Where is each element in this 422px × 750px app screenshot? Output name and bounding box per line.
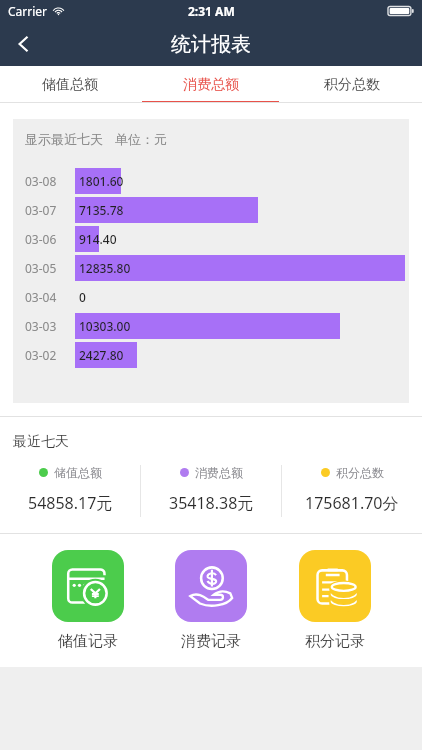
staticText: Carrier xyxy=(8,3,48,19)
staticText: 积分总数 xyxy=(336,465,384,480)
staticText: 914.40 xyxy=(79,231,117,247)
staticText: 储值记录 xyxy=(58,632,118,651)
staticText: 2427.80 xyxy=(79,347,124,363)
staticText: 积分总数 xyxy=(324,76,380,94)
staticText: 消费记录 xyxy=(181,632,241,651)
staticText: 0 xyxy=(79,289,86,305)
staticText: 7135.78 xyxy=(79,202,124,218)
staticText: 统计报表 xyxy=(171,32,251,57)
staticText: 03-05 xyxy=(25,260,57,276)
button[interactable]: 积分记录 xyxy=(299,550,371,651)
staticText: 03-07 xyxy=(25,202,57,218)
staticText: 03-03 xyxy=(25,318,57,334)
button[interactable]: 消费总额 xyxy=(141,465,281,514)
staticText: 10303.00 xyxy=(79,318,131,334)
staticText: 2:31 AM xyxy=(188,3,235,19)
staticText: 12835.80 xyxy=(79,260,131,276)
button[interactable]: 积分总数 xyxy=(282,465,422,514)
staticText: 显示最近七天 xyxy=(25,131,103,147)
staticText: 积分记录 xyxy=(305,632,365,651)
staticText: 消费总额 xyxy=(195,465,243,480)
button[interactable]: 消费记录 xyxy=(175,550,247,651)
staticText: 175681.70分 xyxy=(305,492,399,514)
button[interactable]: 储值总额 xyxy=(0,465,140,514)
button[interactable]: 储值记录 xyxy=(52,550,124,651)
button[interactable]: 消费总额 xyxy=(140,66,281,103)
button[interactable]: 储值总额 xyxy=(0,66,140,103)
staticText: 35418.38元 xyxy=(169,492,254,514)
staticText: 03-04 xyxy=(25,289,57,305)
button[interactable]: Back xyxy=(0,22,48,66)
staticText: 最近七天 xyxy=(13,433,69,451)
staticText: 单位：元 xyxy=(115,131,167,147)
staticText: 03-08 xyxy=(25,173,57,189)
staticText: 储值总额 xyxy=(42,76,98,94)
staticText: 消费总额 xyxy=(183,76,239,94)
staticText: 54858.17元 xyxy=(28,492,113,514)
staticText: 储值总额 xyxy=(54,465,102,480)
staticText: 03-06 xyxy=(25,231,57,247)
staticText: 03-02 xyxy=(25,347,57,363)
button[interactable]: 积分总数 xyxy=(281,66,422,103)
staticText: 1801.60 xyxy=(79,173,124,189)
